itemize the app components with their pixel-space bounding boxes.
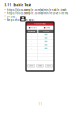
staticText: Undo — [29, 65, 33, 67]
button[interactable]: Empty — [36, 64, 44, 67]
staticText: ITEM NAME — [28, 30, 35, 32]
staticText: Restore — [31, 27, 37, 29]
button[interactable]: Delete — [40, 27, 54, 29]
staticText: 11 — [39, 102, 43, 106]
button[interactable]: ITEM NAME — [26, 30, 38, 33]
staticText: • — [4, 15, 5, 18]
staticText: STATUS — [43, 30, 49, 32]
staticText: or use: — [7, 15, 17, 18]
staticText: 3.11 Enable Trash — [4, 3, 31, 7]
button[interactable]: STATUS — [38, 30, 54, 33]
staticText: • — [31, 34, 32, 35]
button[interactable]: Restore — [26, 27, 40, 29]
staticText: Steps shown in app: — [7, 18, 35, 22]
staticText: https://docs.example.com/admin/enable-tr… — [7, 8, 67, 12]
staticText: • — [4, 11, 5, 15]
staticText: Close — [47, 65, 51, 67]
staticText: Trash Settings — [34, 23, 46, 25]
staticText: Empty — [38, 65, 42, 67]
staticText: • — [4, 8, 5, 12]
button[interactable]: Undo — [27, 64, 35, 67]
staticText: https://docs.example.com/admin/recover-i… — [7, 11, 68, 15]
staticText: Delete — [46, 27, 50, 29]
button[interactable]: Close — [45, 64, 53, 67]
staticText: • — [4, 18, 5, 22]
